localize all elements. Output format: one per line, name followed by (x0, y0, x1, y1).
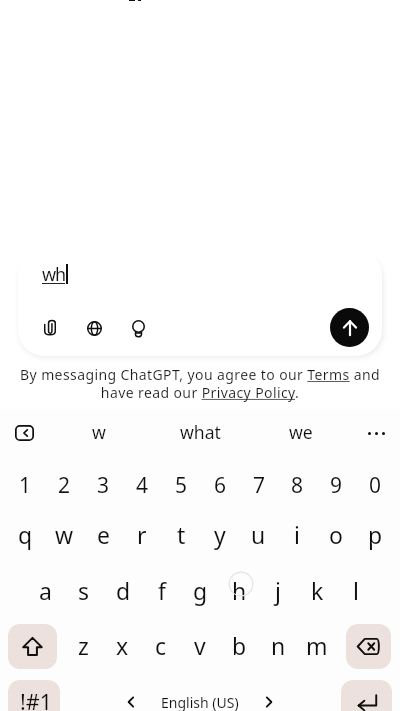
button[interactable]: More suggestions (358, 419, 394, 447)
staticText: m (306, 630, 328, 661)
button[interactable]: m (298, 621, 336, 669)
button[interactable]: 9 (317, 461, 355, 509)
button[interactable]: d (104, 566, 142, 614)
staticText: g (193, 575, 208, 606)
button[interactable]: u (239, 510, 277, 558)
button[interactable]: t (162, 510, 200, 558)
staticText: h (232, 575, 247, 606)
button[interactable]: English (US) (126, 687, 274, 711)
button[interactable]: r (123, 510, 161, 558)
button[interactable]: g (181, 566, 219, 614)
staticText: t (177, 519, 186, 550)
staticText: 2 (58, 471, 71, 500)
staticText: r (137, 519, 147, 550)
button[interactable]: 5 (162, 461, 200, 509)
staticText: 5 (175, 471, 188, 500)
staticText: q (18, 519, 33, 550)
button[interactable]: Search the web (80, 314, 108, 342)
button[interactable]: k (298, 566, 336, 614)
button[interactable]: 3 (84, 461, 122, 509)
button[interactable]: Backspace (346, 624, 391, 669)
staticText: o (329, 519, 343, 550)
staticText: wh (42, 262, 66, 287)
button[interactable]: p (356, 510, 394, 558)
staticText: d (116, 575, 131, 606)
button[interactable]: 4 (123, 461, 161, 509)
staticText: c (155, 630, 167, 661)
staticText: j (275, 575, 281, 606)
button[interactable]: b (220, 621, 258, 669)
staticText: w (55, 519, 74, 550)
button[interactable]: 0 (356, 461, 394, 509)
button[interactable]: v (181, 621, 219, 669)
button[interactable]: q (6, 510, 44, 558)
button[interactable]: x (103, 621, 141, 669)
staticText: By messaging ChatGPT, you agree to our T… (0, 365, 400, 402)
staticText: 4 (136, 471, 149, 500)
button[interactable]: what (156, 410, 244, 454)
button[interactable]: e (84, 510, 122, 558)
button[interactable]: Attach files (36, 314, 64, 342)
staticText: what (180, 420, 221, 444)
button[interactable]: Show keyboard toolbar (10, 425, 39, 441)
button[interactable]: i (278, 510, 316, 558)
staticText: i (294, 519, 300, 550)
staticText: n (271, 630, 286, 661)
staticText: 7 (253, 471, 266, 500)
staticText: e (97, 519, 110, 550)
button[interactable]: h (220, 566, 258, 614)
staticText: w (92, 420, 106, 444)
staticText: k (311, 575, 324, 606)
staticText: y (214, 519, 226, 550)
staticText: 8 (291, 471, 304, 500)
staticText: x (116, 630, 129, 661)
button[interactable]: Think longer (124, 314, 152, 342)
button[interactable]: 7 (240, 461, 278, 509)
staticText: s (78, 575, 90, 606)
button[interactable]: 1 (6, 461, 44, 509)
button[interactable]: 2 (45, 461, 83, 509)
staticText: 3 (97, 471, 110, 500)
button[interactable]: 6 (201, 461, 239, 509)
staticText: l (353, 575, 359, 606)
button[interactable]: a (26, 566, 64, 614)
button[interactable]: 8 (278, 461, 316, 509)
staticText: f (158, 575, 166, 606)
button[interactable]: w (55, 410, 143, 454)
button[interactable]: Send message (330, 308, 369, 347)
button[interactable]: we (257, 410, 345, 454)
staticText: p (368, 519, 383, 550)
button[interactable]: z (64, 621, 102, 669)
staticText: z (78, 630, 89, 661)
button[interactable]: o (317, 510, 355, 558)
staticText: 9 (330, 471, 343, 500)
button[interactable]: w (45, 510, 83, 558)
staticText: !#1 (20, 687, 52, 711)
staticText: u (251, 519, 266, 550)
button[interactable]: s (65, 566, 103, 614)
staticText: 6 (214, 471, 227, 500)
button[interactable]: c (142, 621, 180, 669)
staticText: 1 (19, 471, 32, 500)
staticText: English (US) (161, 693, 239, 711)
staticText: b (232, 630, 247, 661)
button[interactable]: j (259, 566, 297, 614)
staticText: a (39, 575, 52, 606)
button[interactable]: Shift (8, 624, 57, 669)
button[interactable]: f (143, 566, 181, 614)
button[interactable]: Enter (341, 680, 392, 711)
staticText: v (194, 630, 206, 661)
button[interactable]: y (201, 510, 239, 558)
staticText: we (289, 420, 313, 444)
button[interactable]: l (337, 566, 375, 614)
button[interactable]: n (259, 621, 297, 669)
staticText: 0 (369, 471, 382, 500)
button[interactable]: !#1 (8, 680, 60, 711)
